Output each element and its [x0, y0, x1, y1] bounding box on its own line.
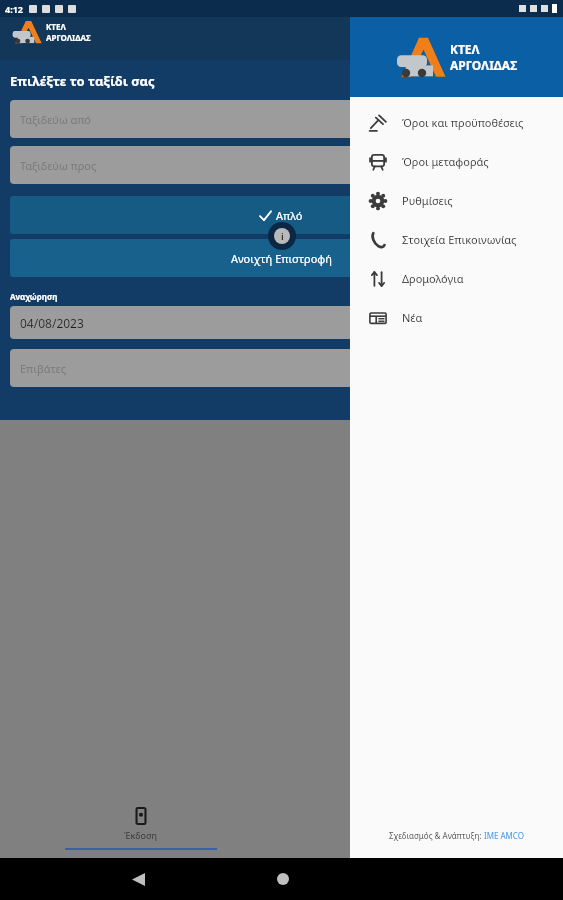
- staticText: Έκδοση: [124, 829, 158, 841]
- staticText: ΚΤΕΛ: [450, 41, 480, 57]
- staticText: i: [281, 230, 284, 242]
- button[interactable]: Ταξιδεύω προς: [10, 146, 553, 184]
- button[interactable]: Απλό: [10, 196, 553, 234]
- button[interactable]: 04/08/2023: [10, 306, 473, 339]
- button[interactable]: Δρομολόγια: [281, 800, 563, 858]
- button[interactable]: IME AMCO: [484, 830, 525, 841]
- other: Home: [277, 873, 289, 885]
- staticText: Όροι μεταφοράς: [402, 154, 489, 169]
- button[interactable]: Έκδοση: [0, 800, 281, 858]
- button[interactable]: Επιβάτες: [10, 349, 553, 387]
- staticText: Αναχώρηση: [10, 291, 483, 302]
- staticText: Ανοιχτή Επιστροφή: [231, 251, 332, 266]
- staticText: ΚΤΕΛ: [46, 21, 66, 32]
- button[interactable]: Όροι μεταφοράς: [350, 142, 563, 181]
- button[interactable]: Ανοιχτή Επιστροφή: [10, 239, 553, 277]
- staticText: ΑΡΓΟΛΙΔΑΣ: [46, 32, 91, 43]
- staticText: Απλό: [276, 208, 303, 223]
- staticText: Όροι και προϋποθέσεις: [402, 115, 524, 130]
- staticText: Δρομολόγια: [402, 271, 464, 286]
- staticText: Σχεδιασμός & Ανάπτυξη:: [389, 830, 484, 841]
- staticText: Δρομολόγια: [397, 834, 448, 846]
- other: Back: [132, 873, 145, 886]
- staticText: 4:12: [5, 3, 23, 15]
- button[interactable]: Στοιχεία Επικοινωνίας: [350, 220, 563, 259]
- button[interactable]: Ταξιδεύω από: [10, 100, 553, 138]
- button[interactable]: Νέα: [350, 298, 563, 337]
- staticText: Επιλέξτε το ταξίδι σας: [10, 72, 155, 90]
- staticText: 04/08/2023: [20, 315, 84, 331]
- button[interactable]: Ρυθμίσεις: [350, 181, 563, 220]
- button[interactable]: Πληροφορίες: [268, 222, 296, 250]
- staticText: Σας ευχόμαστε καλό ταξίδι!: [0, 444, 545, 458]
- staticText: Ταξιδεύω προς: [20, 158, 97, 173]
- staticText: ΑΡΓΟΛΙΔΑΣ: [450, 57, 518, 73]
- staticText: Ρυθμίσεις: [402, 193, 453, 208]
- staticText: Στοιχεία Επικοινωνίας: [402, 232, 517, 247]
- staticText: Επιβάτες: [20, 361, 67, 376]
- staticText: Ταξιδεύω από: [20, 112, 92, 127]
- button[interactable]: Όροι και προϋποθέσεις: [350, 103, 563, 142]
- staticText: Νέα: [402, 310, 423, 325]
- button[interactable]: Δρομολόγια: [350, 259, 563, 298]
